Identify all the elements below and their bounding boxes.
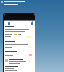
- button[interactable]: [5, 25, 34, 40]
- button[interactable]: Notifications: [31, 22, 33, 25]
- button[interactable]: [5, 59, 34, 64]
- button[interactable]: [5, 40, 34, 50]
- button[interactable]: [5, 50, 34, 58]
- button[interactable]: [5, 65, 34, 72]
- button[interactable]: Menu: [8, 22, 10, 25]
